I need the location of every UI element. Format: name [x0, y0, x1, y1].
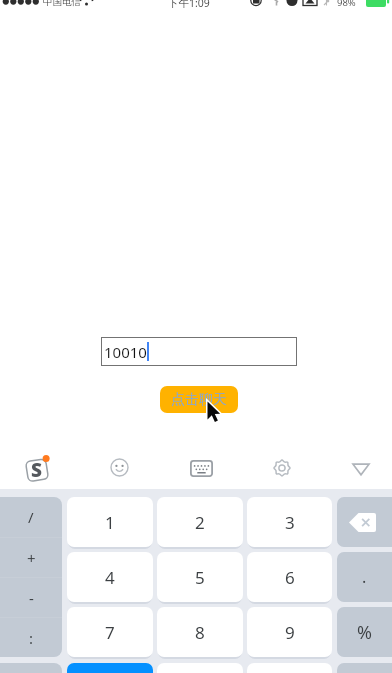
staticText: 1: [105, 511, 115, 534]
button[interactable]: 1: [67, 497, 153, 547]
button[interactable]: [157, 663, 243, 673]
staticText: 2: [195, 511, 205, 534]
button[interactable]: 点击聊天: [160, 386, 238, 413]
button[interactable]: [0, 663, 62, 673]
staticText: 7: [105, 621, 115, 644]
button[interactable]: Hide keyboard: [326, 446, 392, 489]
button[interactable]: Switch keyboard: [160, 446, 242, 489]
staticText: 9: [285, 621, 295, 644]
staticText: 10010: [104, 342, 147, 362]
other: Backspace: [349, 513, 376, 532]
staticText: 4: [105, 566, 115, 589]
button[interactable]: [67, 663, 153, 673]
button[interactable]: 9: [247, 607, 332, 657]
staticText: +: [27, 548, 36, 568]
button[interactable]: 4: [67, 552, 153, 602]
button[interactable]: 6: [247, 552, 332, 602]
button[interactable]: [337, 663, 392, 673]
staticText: 3: [285, 511, 295, 534]
staticText: /: [28, 507, 34, 527]
button[interactable]: %: [337, 607, 392, 657]
staticText: 点击聊天: [171, 391, 227, 409]
button[interactable]: +: [0, 538, 62, 577]
button[interactable]: 3: [247, 497, 332, 547]
button[interactable]: Sogou input method: [0, 446, 75, 489]
button[interactable]: 7: [67, 607, 153, 657]
staticText: :: [29, 628, 34, 648]
button[interactable]: Emoji: [78, 446, 160, 489]
staticText: %: [357, 620, 372, 645]
staticText: S: [31, 457, 42, 483]
button[interactable]: 8: [157, 607, 243, 657]
button[interactable]: Settings: [242, 446, 322, 489]
button[interactable]: -: [0, 578, 62, 617]
staticText: 8: [195, 621, 205, 644]
button[interactable]: :: [0, 618, 62, 657]
staticText: .: [362, 566, 367, 588]
button[interactable]: 2: [157, 497, 243, 547]
staticText: 下午1:09: [168, 0, 210, 8]
staticText: 中国电信: [43, 0, 81, 8]
staticText: 98%: [337, 0, 356, 8]
button[interactable]: [247, 663, 332, 673]
button[interactable]: 5: [157, 552, 243, 602]
button[interactable]: 10010: [101, 337, 297, 366]
staticText: 5: [195, 566, 205, 589]
staticText: 6: [285, 566, 295, 589]
button[interactable]: .: [337, 552, 392, 602]
button[interactable]: /: [0, 497, 62, 537]
button[interactable]: Backspace: [337, 497, 392, 547]
staticText: -: [29, 588, 34, 608]
